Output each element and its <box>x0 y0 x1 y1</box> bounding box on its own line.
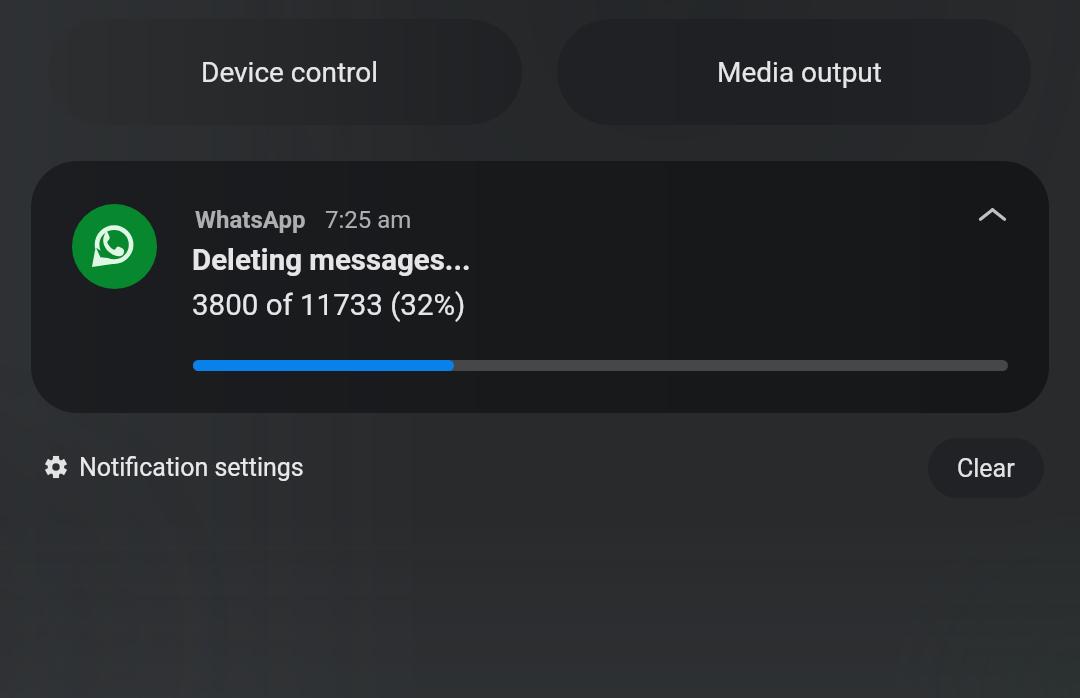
button[interactable]: Collapse notification <box>963 185 1021 243</box>
staticText: Notification settings <box>79 453 304 482</box>
staticText: Media output <box>717 56 882 89</box>
staticText: 3800 of 11733 (32%) <box>192 288 466 323</box>
button[interactable]: Device control <box>48 19 522 125</box>
staticText: 7:25 am <box>325 206 412 234</box>
staticText: Clear <box>957 454 1015 483</box>
button[interactable]: Media output <box>557 19 1031 125</box>
staticText: Device control <box>201 56 379 89</box>
button[interactable]: Notification settings <box>44 440 304 494</box>
staticText: WhatsApp <box>195 206 306 234</box>
button[interactable]: Clear <box>928 438 1044 498</box>
button[interactable]: WhatsApp <box>31 161 1049 413</box>
staticText: Deleting messages... <box>192 243 471 278</box>
